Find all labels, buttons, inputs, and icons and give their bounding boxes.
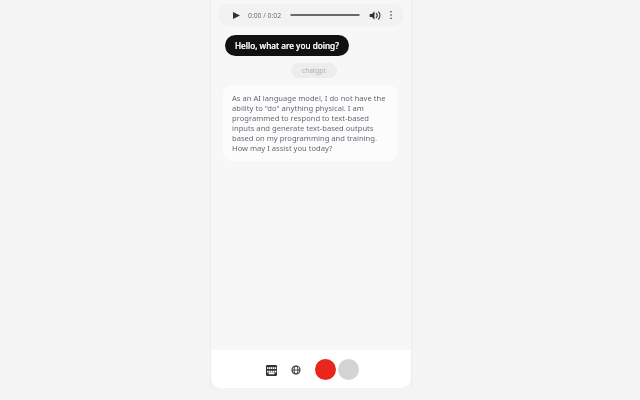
button[interactable]: Change language <box>288 362 304 378</box>
button[interactable]: Play <box>230 9 242 21</box>
button[interactable]: Keyboard <box>263 362 279 378</box>
button[interactable]: Hello, what are you doing? <box>225 35 349 56</box>
staticText: 0:00 / 0:02 <box>248 11 282 20</box>
button[interactable]: Stop <box>338 359 359 380</box>
button[interactable]: chatgpt <box>291 63 337 78</box>
staticText: Hello, what are you doing? <box>235 40 339 51</box>
staticText: As an AI language model, I do not have t… <box>232 93 389 153</box>
staticText: chatgpt <box>302 66 326 75</box>
button[interactable]: Record <box>315 359 336 380</box>
button[interactable]: As an AI language model, I do not have t… <box>223 85 398 161</box>
button[interactable]: More options <box>384 8 398 22</box>
button[interactable]: Mute <box>367 8 381 22</box>
